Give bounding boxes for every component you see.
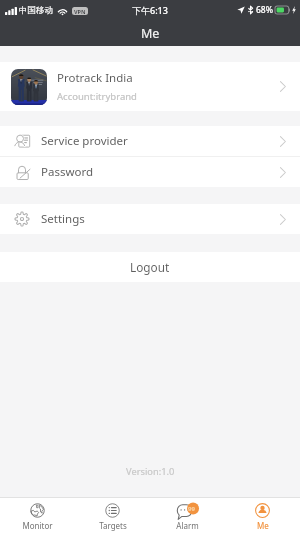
staticText: Settings — [41, 211, 85, 227]
staticText: Monitor — [22, 520, 53, 531]
staticText: Me — [257, 520, 269, 531]
staticText: VPN — [74, 8, 86, 15]
staticText: Alarm — [176, 520, 199, 531]
button[interactable]: Targets — [75, 498, 150, 533]
staticText: 68% — [256, 4, 273, 16]
button[interactable]: Settings — [0, 204, 300, 234]
staticText: Password — [41, 164, 94, 180]
button[interactable]: Service provider — [0, 126, 300, 156]
staticText: Logout — [130, 259, 170, 275]
staticText: Protrack India — [57, 70, 133, 86]
staticText: Targets — [99, 520, 127, 531]
button[interactable]: Logout — [0, 252, 300, 282]
button[interactable]: Me — [225, 498, 300, 533]
staticText: 下午6:13 — [132, 4, 168, 16]
button[interactable]: Protrack India — [0, 62, 300, 111]
staticText: Version:1.0 — [126, 465, 175, 478]
button[interactable]: Monitor — [0, 498, 75, 533]
staticText: Service provider — [41, 133, 128, 149]
staticText: Me — [141, 25, 160, 42]
staticText: 99 — [188, 505, 195, 513]
button[interactable]: Alarm — [150, 498, 225, 533]
staticText: Account:itrybrand — [57, 90, 137, 103]
staticText: 中国移动 — [19, 5, 53, 16]
button[interactable]: Password — [0, 157, 300, 187]
